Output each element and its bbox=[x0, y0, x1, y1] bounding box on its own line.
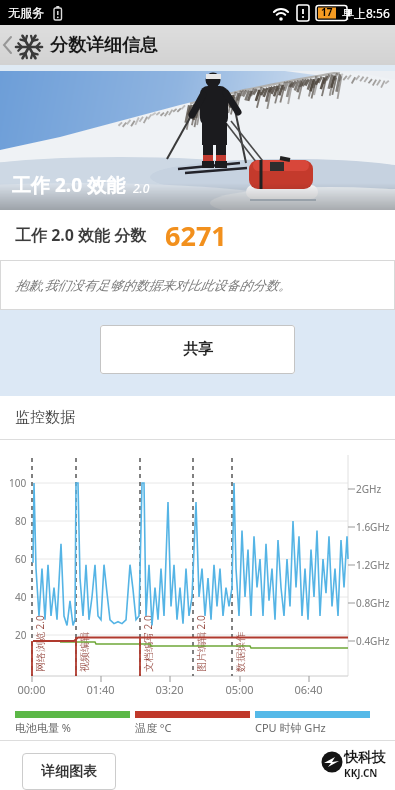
staticText: 无服务 bbox=[8, 5, 44, 20]
staticText: 抱歉,我们没有足够的数据来对比此设备的分数。 bbox=[15, 276, 292, 294]
staticText: 温度 °C bbox=[135, 720, 172, 735]
staticText: 监控数据 bbox=[15, 408, 75, 427]
button[interactable]: 共享 bbox=[100, 325, 295, 374]
staticText: KKJ.CN bbox=[344, 766, 378, 780]
staticText: 工作 2.0 效能 分数 bbox=[15, 224, 147, 246]
staticText: 工作 2.0 效能 bbox=[12, 172, 125, 198]
button[interactable]: 详细图表 bbox=[22, 753, 116, 790]
staticText: 17 bbox=[321, 5, 333, 19]
staticText: 共享 bbox=[183, 340, 213, 359]
staticText: 电池电量 % bbox=[15, 720, 72, 735]
staticText: 2.0 bbox=[133, 180, 150, 196]
button[interactable] bbox=[0, 33, 14, 57]
staticText: 6271 bbox=[165, 217, 227, 254]
staticText: 详细图表 bbox=[41, 763, 97, 781]
staticText: 早上8:56 bbox=[342, 5, 390, 21]
staticText: 分数详细信息 bbox=[50, 34, 158, 57]
staticText: CPU 时钟 GHz bbox=[255, 720, 326, 735]
staticText: 快科技 bbox=[344, 749, 386, 767]
